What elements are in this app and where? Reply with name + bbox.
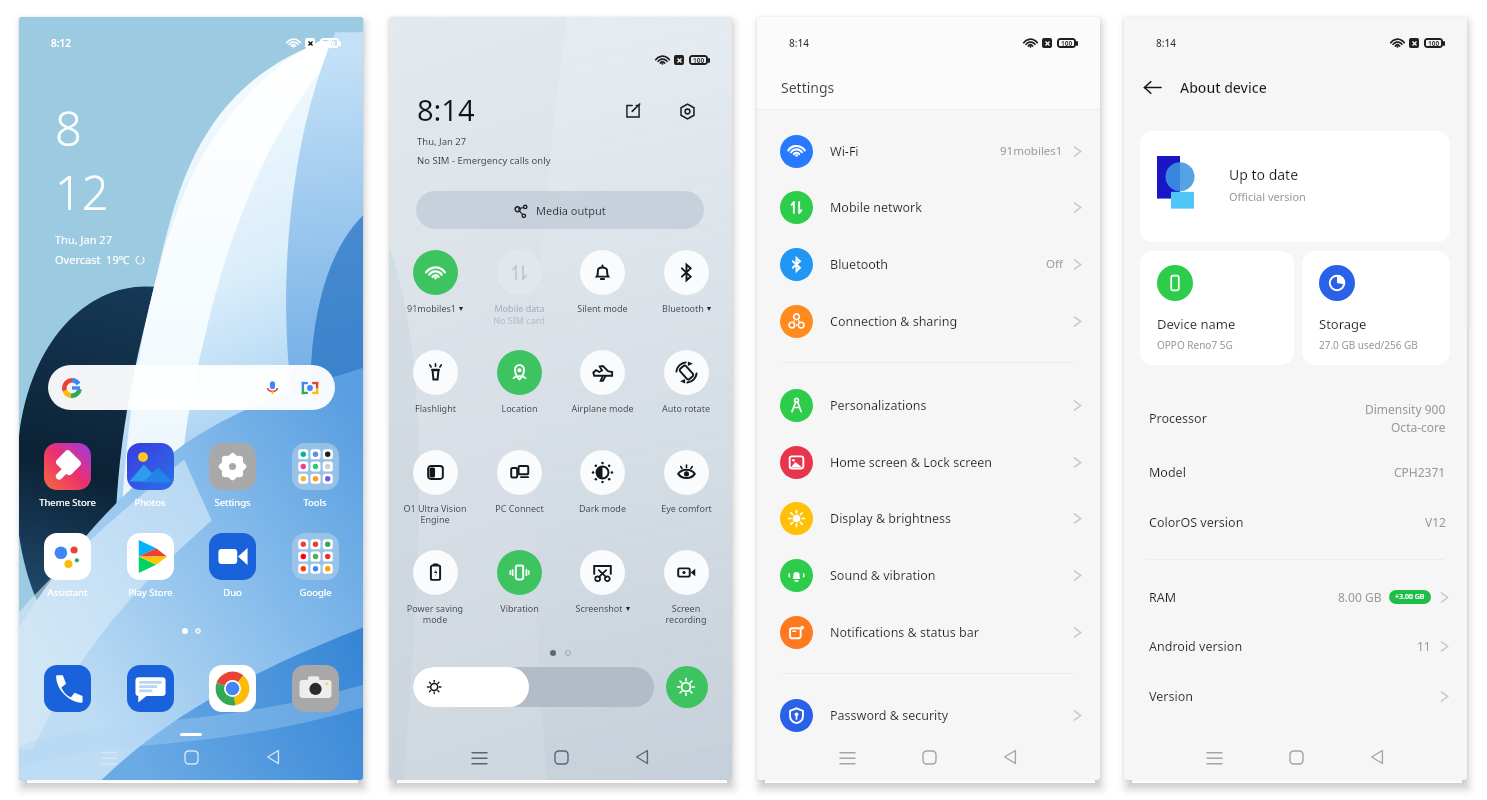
button[interactable]: Media output [416,191,704,229]
button[interactable]: Vibration [484,550,554,614]
staticText: 100 [324,39,336,48]
button[interactable]: Settings [193,443,271,509]
button[interactable]: Mobile data [484,250,554,326]
button[interactable]: 91mobiles1 [400,250,470,314]
staticText: 91mobiles1 [1000,143,1063,159]
button[interactable]: Flashlight [400,350,470,414]
staticText: 100 [1428,39,1440,48]
staticText: Android version [1149,638,1243,655]
button[interactable]: Sound & vibration [757,547,1100,603]
staticText: 91mobiles1 [407,302,456,314]
staticText: RAM [1149,589,1177,606]
button[interactable]: Recents [827,741,867,773]
button[interactable]: Airplane mode [567,350,637,414]
button[interactable]: Edit [619,97,647,125]
staticText: Eye comfort [661,502,712,514]
staticText: Version [1149,688,1193,705]
button[interactable]: Back [622,741,662,773]
button[interactable]: O1 Ultra Vision Engine [400,450,470,526]
staticText: 8:14 [417,90,475,129]
staticText: Assistant [47,586,88,599]
staticText: Connection & sharing [830,313,958,330]
button[interactable]: Recents [1194,741,1234,773]
button[interactable]: Version [1124,671,1467,721]
button[interactable]: Back [1357,741,1397,773]
button[interactable]: Connection & sharing [757,293,1100,349]
button[interactable]: Settings [673,97,701,125]
button[interactable]: Bluetooth [757,236,1100,292]
button[interactable]: Android version [1124,621,1467,671]
button[interactable]: Screen recording [651,550,721,626]
staticText: About device [1180,78,1267,97]
button[interactable]: Brightness [413,667,654,707]
staticText: Model [1149,464,1186,481]
staticText: 11 [1417,638,1431,654]
button[interactable]: Wi-Fi [757,123,1100,179]
button[interactable]: Google [276,533,354,599]
button[interactable]: Screenshot [567,550,637,614]
button[interactable]: Notifications & status bar [757,604,1100,660]
button[interactable]: Theme Store [28,443,106,509]
staticText: No SIM card [493,314,545,326]
staticText: Flashlight [415,402,456,414]
button[interactable]: Recents [89,741,129,773]
staticText: Thu, Jan 27 [417,135,467,148]
button[interactable]: Back [1138,73,1166,101]
button[interactable]: Recents [459,741,499,773]
staticText: Google [299,586,332,599]
button[interactable]: Display & brightness [757,490,1100,546]
staticText: 12 [55,160,109,224]
staticText: Mobile network [830,199,922,216]
staticText: Power saving mode [400,602,470,626]
button[interactable]: Home screen & Lock screen [757,434,1100,490]
staticText: Octa-core [1391,419,1446,435]
button[interactable]: Photos [111,443,189,509]
staticText: Photos [134,496,166,509]
button[interactable]: Up to date [1140,131,1450,242]
staticText: Media output [536,203,606,218]
staticText: Duo [223,586,242,599]
button[interactable]: Personalizations [757,377,1100,433]
staticText: Screen recording [651,602,721,626]
staticText: 8.00 GB [1338,589,1382,605]
button[interactable]: Back [990,741,1030,773]
staticText: +3.00 GB [1395,592,1425,602]
button[interactable]: Silent mode [567,250,637,314]
button[interactable]: PC Connect [484,450,554,514]
button[interactable]: Location [484,350,554,414]
staticText: No SIM - Emergency calls only [417,154,551,167]
button[interactable]: Auto rotate [651,350,721,414]
staticText: 8:12 [51,36,71,50]
staticText: 8:14 [789,36,809,50]
staticText: Vibration [500,602,539,614]
button[interactable]: Auto brightness [666,666,708,708]
button[interactable]: Play Store [111,533,189,599]
staticText: Settings [214,496,251,509]
button[interactable]: Camera [276,665,354,712]
button[interactable]: Home [171,741,211,773]
button[interactable]: Storage [1302,251,1450,365]
staticText: Notifications & status bar [830,624,979,641]
button[interactable]: Power saving mode [400,550,470,626]
button[interactable]: Tools [276,443,354,509]
staticText: O1 Ultra Vision Engine [400,502,470,526]
button[interactable]: Mobile network [757,179,1100,235]
button[interactable]: Eye comfort [651,450,721,514]
button[interactable]: Device name [1140,251,1294,365]
staticText: Theme Store [39,496,96,509]
button[interactable]: Messages [111,665,189,712]
button[interactable]: Home [909,741,949,773]
button[interactable]: Duo [193,533,271,599]
button[interactable]: Home [541,741,581,773]
button[interactable] [48,365,335,410]
button[interactable]: Back [253,741,293,773]
button[interactable]: Bluetooth [651,250,721,314]
button[interactable]: Phone [28,665,106,712]
button[interactable]: Home [1276,741,1316,773]
button[interactable]: Chrome [193,665,271,712]
button[interactable]: RAM [1124,572,1467,622]
button[interactable]: Password & security [757,687,1100,743]
button[interactable]: Dark mode [567,450,637,514]
staticText: Settings [781,78,835,97]
button[interactable]: Assistant [28,533,106,599]
